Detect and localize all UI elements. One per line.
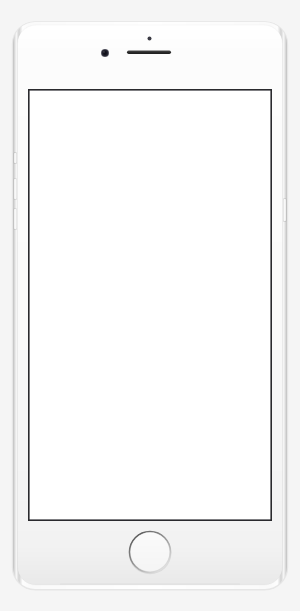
button[interactable]: iPhone device mockup [0, 0, 300, 611]
